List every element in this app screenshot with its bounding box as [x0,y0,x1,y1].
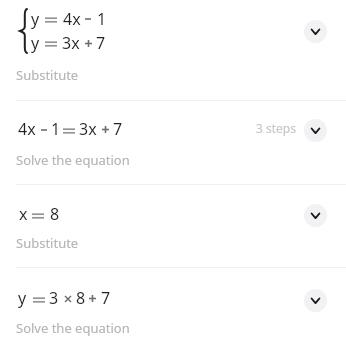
button[interactable]: Expand step [304,20,327,43]
button[interactable]: x [0,184,346,267]
button[interactable]: Expand step [304,204,327,227]
button[interactable]: Expand step [304,119,327,142]
button[interactable]: y [0,267,346,347]
staticText: 4x [63,8,81,30]
staticText: 3 [49,287,59,309]
staticText: 3 steps [256,120,296,136]
staticText: Substitute [16,234,79,252]
button[interactable]: Expand step [304,289,327,312]
staticText: 8 [50,203,60,225]
staticText: 8 [76,287,86,309]
staticText: y [31,32,40,54]
staticText: 7 [113,118,123,140]
staticText: 7 [101,287,111,309]
staticText: 3x [62,32,80,54]
staticText: y [31,8,40,30]
staticText: 4x [18,118,36,140]
button[interactable]: y [0,0,346,101]
button[interactable]: 4x [0,101,346,185]
staticText: 1 [97,8,107,30]
staticText: 7 [96,32,106,54]
staticText: y [18,287,27,309]
staticText: Solve the equation [16,151,130,169]
staticText: Substitute [16,66,79,84]
staticText: Solve the equation [16,319,130,337]
staticText: 3x [79,118,97,140]
staticText: 1 [51,118,61,140]
staticText: x [19,203,28,225]
